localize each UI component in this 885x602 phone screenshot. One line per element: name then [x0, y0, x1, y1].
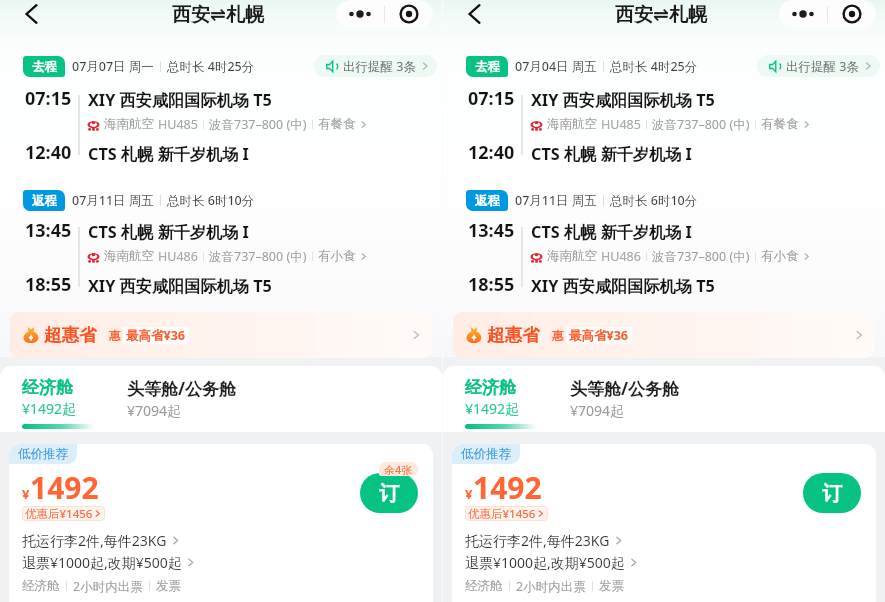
staticText: 07月11日 周五	[72, 192, 154, 209]
button[interactable]: More options	[336, 0, 384, 28]
button[interactable]: 订	[360, 473, 418, 513]
staticText: 有餐食	[318, 116, 356, 132]
staticText: 18:55	[25, 272, 72, 297]
staticText: 海南航空	[104, 116, 154, 132]
button[interactable]: 低价推荐	[9, 444, 433, 602]
staticText: 有小食	[761, 248, 799, 264]
staticText: ¥	[465, 485, 473, 503]
button[interactable]: 出行提醒 3条	[757, 55, 880, 77]
staticText: 发票	[156, 578, 181, 594]
staticText: 头等舱/公务舱	[570, 377, 680, 400]
staticText: 西安⇌札幌	[172, 3, 264, 27]
staticText: 低价推荐	[18, 446, 68, 462]
staticText: 2小时内出票	[73, 578, 143, 595]
staticText: 13:45	[25, 218, 72, 243]
staticText: 惠	[109, 329, 121, 343]
staticText: 返程	[32, 193, 57, 209]
staticText: 余4张	[384, 462, 413, 476]
staticText: 最高省¥36	[126, 327, 185, 344]
staticText: 托运行李2件,每件23KG	[465, 531, 610, 550]
staticText: 总时长 4时25分	[610, 58, 698, 75]
staticText: ¥	[22, 485, 30, 503]
staticText: ¥7094起	[127, 401, 182, 420]
staticText: 订	[379, 481, 399, 506]
staticText: CTS 札幌 新千岁机场 I	[531, 143, 692, 165]
button[interactable]: 经济舱	[465, 377, 537, 429]
staticText: 总时长 4时25分	[167, 58, 255, 75]
staticText: 07:15	[468, 86, 515, 111]
button[interactable]: 头等舱/公务舱	[127, 377, 237, 420]
button[interactable]: Back	[460, 0, 488, 28]
button[interactable]: 超惠省	[10, 312, 432, 358]
staticText: HU486	[601, 248, 641, 265]
staticText: 经济舱	[22, 578, 60, 594]
staticText: HU485	[158, 116, 198, 133]
staticText: 有餐食	[761, 116, 799, 132]
staticText: ¥1492起	[22, 399, 77, 418]
staticText: 经济舱	[22, 377, 73, 398]
staticText: 优惠后¥1456	[25, 506, 93, 521]
button[interactable]: 13:45	[0, 217, 442, 297]
button[interactable]: 优惠后¥1456	[465, 506, 548, 521]
button[interactable]: 退票¥1000起,改期¥500起	[465, 552, 639, 572]
staticText: 总时长 6时10分	[610, 192, 698, 209]
staticText: HU486	[158, 248, 198, 265]
staticText: 波音737–800 (中)	[209, 116, 307, 133]
staticText: 12:40	[468, 140, 515, 165]
button[interactable]: 优惠后¥1456	[22, 506, 105, 521]
staticText: XIY 西安咸阳国际机场 T5	[531, 275, 715, 297]
staticText: 海南航空	[104, 248, 154, 264]
button[interactable]: 13:45	[443, 217, 885, 297]
button[interactable]: More options	[779, 0, 827, 28]
staticText: 最高省¥36	[569, 327, 628, 344]
staticText: 海南航空	[547, 248, 597, 264]
button[interactable]: Close	[828, 0, 876, 28]
button[interactable]: 07:15	[443, 85, 885, 165]
staticText: 1492	[473, 467, 542, 508]
staticText: 退票¥1000起,改期¥500起	[22, 553, 182, 572]
staticText: 出行提醒 3条	[786, 58, 859, 75]
staticText: 头等舱/公务舱	[127, 377, 237, 400]
staticText: 13:45	[468, 218, 515, 243]
button[interactable]: 出行提醒 3条	[314, 55, 437, 77]
staticText: 07:15	[25, 86, 72, 111]
button[interactable]: 订	[803, 473, 861, 513]
staticText: 去程	[32, 59, 57, 75]
button[interactable]: 超惠省	[453, 312, 875, 358]
button[interactable]: 经济舱	[22, 377, 94, 429]
staticText: HU485	[601, 116, 641, 133]
staticText: 07月11日 周五	[515, 192, 597, 209]
button[interactable]: 托运行李2件,每件23KG	[22, 530, 181, 550]
staticText: CTS 札幌 新千岁机场 I	[88, 221, 249, 243]
staticText: 去程	[475, 59, 500, 75]
staticText: ¥1492起	[465, 399, 520, 418]
button[interactable]: Back	[17, 0, 45, 28]
staticText: 出行提醒 3条	[343, 58, 416, 75]
staticText: 07月04日 周五	[515, 58, 597, 75]
button[interactable]: 托运行李2件,每件23KG	[465, 530, 624, 550]
staticText: 惠	[552, 329, 564, 343]
staticText: XIY 西安咸阳国际机场 T5	[88, 89, 272, 111]
staticText: 07月07日 周一	[72, 58, 154, 75]
button[interactable]: 头等舱/公务舱	[570, 377, 680, 420]
staticText: 总时长 6时10分	[167, 192, 255, 209]
button[interactable]: Close	[385, 0, 433, 28]
staticText: 波音737–800 (中)	[652, 248, 750, 265]
button[interactable]: 退票¥1000起,改期¥500起	[22, 552, 196, 572]
staticText: ¥7094起	[570, 401, 625, 420]
staticText: 2小时内出票	[516, 578, 586, 595]
staticText: 波音737–800 (中)	[652, 116, 750, 133]
staticText: 返程	[475, 193, 500, 209]
staticText: 12:40	[25, 140, 72, 165]
button[interactable]: 低价推荐	[452, 444, 876, 602]
staticText: 超惠省	[487, 324, 540, 346]
staticText: 发票	[599, 578, 624, 594]
staticText: 退票¥1000起,改期¥500起	[465, 553, 625, 572]
button[interactable]: 07:15	[0, 85, 442, 165]
staticText: 经济舱	[465, 578, 503, 594]
staticText: 18:55	[468, 272, 515, 297]
staticText: XIY 西安咸阳国际机场 T5	[531, 89, 715, 111]
staticText: 有小食	[318, 248, 356, 264]
staticText: 超惠省	[44, 324, 97, 346]
staticText: 低价推荐	[461, 446, 511, 462]
